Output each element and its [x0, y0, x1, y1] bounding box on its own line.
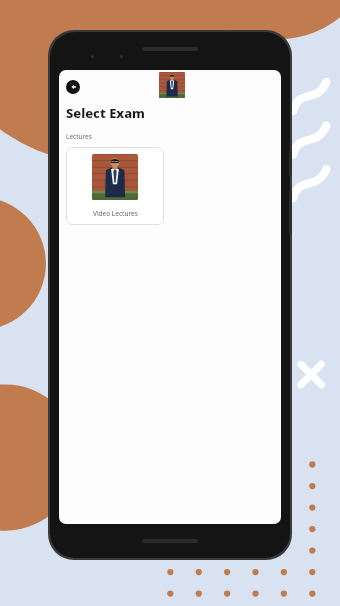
staticText: Lectures — [66, 132, 92, 141]
button[interactable]: Back — [66, 80, 80, 94]
staticText: Video Lectures — [93, 209, 138, 218]
button[interactable]: Video Lectures — [66, 147, 164, 225]
staticText: Select Exam — [66, 104, 145, 122]
button[interactable]: Profile photo — [159, 72, 185, 98]
